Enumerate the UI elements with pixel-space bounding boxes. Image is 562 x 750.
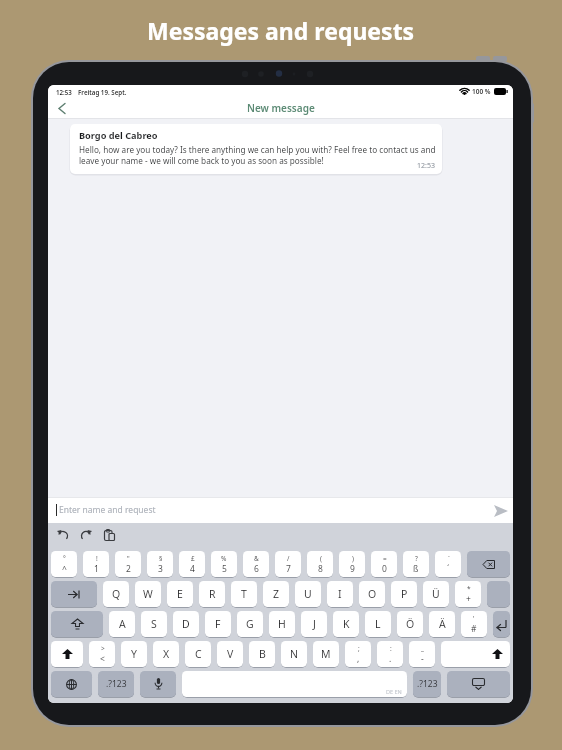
staticText: A: [119, 617, 126, 631]
button[interactable]: R: [199, 581, 225, 607]
button[interactable]: K: [333, 611, 359, 637]
staticText: _: [421, 644, 424, 653]
button[interactable]: F: [205, 611, 231, 637]
staticText: Ö: [406, 617, 415, 631]
button[interactable]: [51, 641, 83, 667]
button[interactable]: °: [51, 551, 77, 577]
button[interactable]: >: [89, 641, 115, 667]
staticText: D: [182, 617, 190, 631]
button[interactable]: £: [179, 551, 205, 577]
button[interactable]: Q: [103, 581, 129, 607]
button[interactable]: [487, 581, 510, 607]
button[interactable]: DE EN: [182, 671, 407, 697]
button[interactable]: =: [371, 551, 397, 577]
staticText: J: [313, 617, 316, 631]
button[interactable]: [80, 530, 92, 540]
staticText: .: [389, 653, 392, 665]
button[interactable]: [441, 641, 510, 667]
button[interactable]: ': [461, 611, 487, 637]
staticText: U: [304, 587, 312, 601]
staticText: W: [143, 587, 153, 601]
button[interactable]: [57, 530, 69, 540]
staticText: 2: [126, 563, 131, 575]
staticText: (: [320, 554, 322, 563]
button[interactable]: Ö: [397, 611, 423, 637]
button[interactable]: Borgo del Cabreo: [70, 124, 442, 174]
button[interactable]: ;: [345, 641, 371, 667]
button[interactable]: [51, 611, 103, 637]
button[interactable]: %: [211, 551, 237, 577]
button[interactable]: A: [109, 611, 135, 637]
staticText: 6: [254, 563, 259, 575]
staticText: .?123: [417, 678, 438, 690]
button[interactable]: H: [269, 611, 295, 637]
button[interactable]: J: [301, 611, 327, 637]
button[interactable]: .?123: [98, 671, 134, 697]
button[interactable]: M: [313, 641, 339, 667]
staticText: S: [151, 617, 157, 631]
staticText: 4: [190, 563, 195, 575]
button[interactable]: X: [153, 641, 179, 667]
button[interactable]: ": [115, 551, 141, 577]
button[interactable]: [51, 671, 92, 697]
staticText: .?123: [106, 678, 127, 690]
button[interactable]: :: [377, 641, 403, 667]
staticText: Q: [112, 587, 121, 601]
button[interactable]: *: [455, 581, 481, 607]
button[interactable]: !: [83, 551, 109, 577]
button[interactable]: &: [243, 551, 269, 577]
button[interactable]: I: [327, 581, 353, 607]
button[interactable]: .?123: [413, 671, 441, 697]
button[interactable]: [54, 101, 68, 115]
button[interactable]: S: [141, 611, 167, 637]
button[interactable]: T: [231, 581, 257, 607]
button[interactable]: §: [147, 551, 173, 577]
staticText: V: [227, 647, 234, 661]
button[interactable]: C: [185, 641, 211, 667]
button[interactable]: [51, 581, 97, 607]
button[interactable]: (: [307, 551, 333, 577]
staticText: 9: [350, 563, 355, 575]
button[interactable]: G: [237, 611, 263, 637]
staticText: 7: [286, 563, 291, 575]
button[interactable]: Z: [263, 581, 289, 607]
staticText: %: [221, 554, 227, 563]
button[interactable]: Ü: [423, 581, 449, 607]
staticText: !: [96, 554, 98, 563]
button[interactable]: D: [173, 611, 199, 637]
button[interactable]: B: [249, 641, 275, 667]
staticText: DE EN: [386, 688, 402, 695]
button[interactable]: O: [359, 581, 385, 607]
button[interactable]: U: [295, 581, 321, 607]
staticText: X: [163, 647, 170, 661]
staticText: ´: [447, 563, 450, 575]
button[interactable]: _: [409, 641, 435, 667]
button[interactable]: E: [167, 581, 193, 607]
staticText: Z: [273, 587, 280, 601]
staticText: H: [278, 617, 286, 631]
button[interactable]: P: [391, 581, 417, 607]
button[interactable]: [493, 611, 510, 637]
button[interactable]: L: [365, 611, 391, 637]
button[interactable]: ): [339, 551, 365, 577]
button[interactable]: V: [217, 641, 243, 667]
button[interactable]: N: [281, 641, 307, 667]
button[interactable]: Ä: [429, 611, 455, 637]
button[interactable]: Y: [121, 641, 147, 667]
staticText: 100 %: [472, 87, 491, 96]
button[interactable]: [447, 671, 510, 697]
button[interactable]: [104, 529, 115, 541]
button[interactable]: W: [135, 581, 161, 607]
staticText: 8: [318, 563, 323, 575]
button[interactable]: [492, 502, 509, 519]
staticText: 5: [222, 563, 227, 575]
button[interactable]: `: [435, 551, 461, 577]
button[interactable]: ?: [403, 551, 429, 577]
button[interactable]: [140, 671, 176, 697]
staticText: £: [191, 554, 195, 563]
staticText: <: [100, 653, 105, 665]
staticText: 1: [94, 563, 99, 575]
button[interactable]: [467, 551, 510, 577]
button[interactable]: /: [275, 551, 301, 577]
staticText: +: [466, 593, 471, 605]
